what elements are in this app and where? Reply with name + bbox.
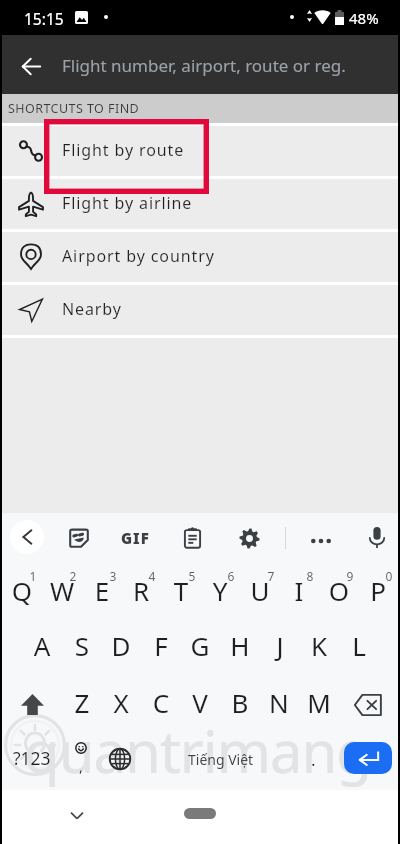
staticText: . xyxy=(311,748,316,771)
button[interactable]: N xyxy=(259,677,299,732)
staticText: B xyxy=(220,685,260,720)
button[interactable]: GIF xyxy=(120,527,151,549)
staticText: I xyxy=(279,573,319,608)
button[interactable]: A xyxy=(22,620,62,675)
staticText: P xyxy=(358,573,398,608)
staticText: 6 xyxy=(224,568,238,584)
button[interactable]: Clipboard xyxy=(179,523,206,553)
staticText: 1 xyxy=(26,568,40,584)
button[interactable]: Settings xyxy=(235,524,264,553)
staticText: 8 xyxy=(303,568,317,584)
button[interactable]: D xyxy=(101,620,141,675)
button[interactable]: P xyxy=(358,565,398,620)
staticText: Nearby xyxy=(62,298,122,320)
button[interactable]: Y xyxy=(200,565,240,620)
button[interactable]: X xyxy=(101,677,141,732)
button[interactable]: Flight by airline xyxy=(0,179,400,229)
staticText: L xyxy=(339,628,379,663)
button[interactable]: K xyxy=(299,620,339,675)
staticText: 9 xyxy=(343,568,357,584)
button[interactable]: Z xyxy=(62,677,102,732)
button[interactable]: Enter xyxy=(344,742,392,774)
button[interactable]: Q xyxy=(2,565,42,620)
staticText: Z xyxy=(62,685,102,720)
staticText: S xyxy=(62,628,102,663)
staticText: Flight number, airport, route or reg. xyxy=(62,54,346,77)
staticText: X xyxy=(101,685,141,720)
button[interactable]: M xyxy=(299,677,339,732)
button[interactable]: Close toolbar xyxy=(10,520,44,554)
staticText: C xyxy=(141,685,181,720)
staticText: 7 xyxy=(264,568,278,584)
button[interactable]: I xyxy=(279,565,319,620)
button[interactable]: ?123 xyxy=(6,735,58,783)
button[interactable]: L xyxy=(339,620,379,675)
staticText: 4 xyxy=(145,568,159,584)
button[interactable]: Nearby xyxy=(0,285,400,335)
staticText: K xyxy=(299,628,339,663)
button[interactable]: C xyxy=(141,677,181,732)
staticText: ?123 xyxy=(13,746,51,770)
button[interactable]: Voice input xyxy=(364,522,390,553)
staticText: GIF xyxy=(121,528,150,548)
button[interactable]: V xyxy=(180,677,220,732)
staticText: G xyxy=(180,628,220,663)
staticText: V xyxy=(180,685,220,720)
staticText: Y xyxy=(200,573,240,608)
staticText: H xyxy=(220,628,260,663)
button[interactable]: Shift xyxy=(8,679,56,729)
button[interactable]: More options xyxy=(308,528,333,553)
staticText: F xyxy=(141,628,181,663)
staticText: U xyxy=(240,573,280,608)
staticText: E xyxy=(82,573,122,608)
button[interactable]: . xyxy=(296,735,330,783)
button[interactable]: Stickers xyxy=(65,524,93,552)
staticText: O xyxy=(319,573,359,608)
staticText: Q xyxy=(2,573,42,608)
staticText: quantrimang xyxy=(24,711,372,790)
staticText: Flight by airline xyxy=(62,192,193,214)
staticText: N xyxy=(259,685,299,720)
staticText: D xyxy=(101,628,141,663)
button[interactable]: U xyxy=(240,565,280,620)
button[interactable]: Change keyboard language xyxy=(102,735,138,783)
staticText: , xyxy=(79,757,83,776)
staticText: A xyxy=(22,628,62,663)
button[interactable]: G xyxy=(180,620,220,675)
button[interactable]: R xyxy=(121,565,161,620)
staticText: 2 xyxy=(66,568,80,584)
button[interactable]: O xyxy=(319,565,359,620)
button[interactable]: J xyxy=(260,620,300,675)
button[interactable]: T xyxy=(161,565,201,620)
staticText: Tiếng Việt xyxy=(188,750,254,769)
staticText: J xyxy=(260,628,300,663)
staticText: Flight by route xyxy=(62,139,185,161)
button[interactable]: F xyxy=(141,620,181,675)
button[interactable]: H xyxy=(220,620,260,675)
button[interactable]: B xyxy=(220,677,260,732)
staticText: Airport by country xyxy=(62,245,215,267)
staticText: T xyxy=(161,573,201,608)
staticText: SHORTCUTS TO FIND xyxy=(8,100,140,117)
staticText: 3 xyxy=(106,568,120,584)
button[interactable]: S xyxy=(62,620,102,675)
staticText: M xyxy=(299,685,339,720)
button[interactable]: E xyxy=(82,565,122,620)
button[interactable]: Hide keyboard xyxy=(57,795,97,835)
button[interactable]: Flight by route xyxy=(0,126,400,176)
staticText: 48% xyxy=(349,8,379,28)
staticText: R xyxy=(121,573,161,608)
button[interactable]: Airport by country xyxy=(0,232,400,282)
button[interactable]: Backspace xyxy=(344,680,392,730)
staticText: 15:15 xyxy=(24,8,64,29)
staticText: 0 xyxy=(382,568,396,584)
button[interactable]: W xyxy=(42,565,82,620)
staticText: 5 xyxy=(185,568,199,584)
button[interactable]: Emoji xyxy=(62,735,100,783)
button[interactable]: Tiếng Việt xyxy=(140,735,302,783)
button[interactable]: Navigate up xyxy=(11,46,51,86)
button[interactable]: Home xyxy=(184,808,216,819)
staticText: W xyxy=(42,573,82,608)
